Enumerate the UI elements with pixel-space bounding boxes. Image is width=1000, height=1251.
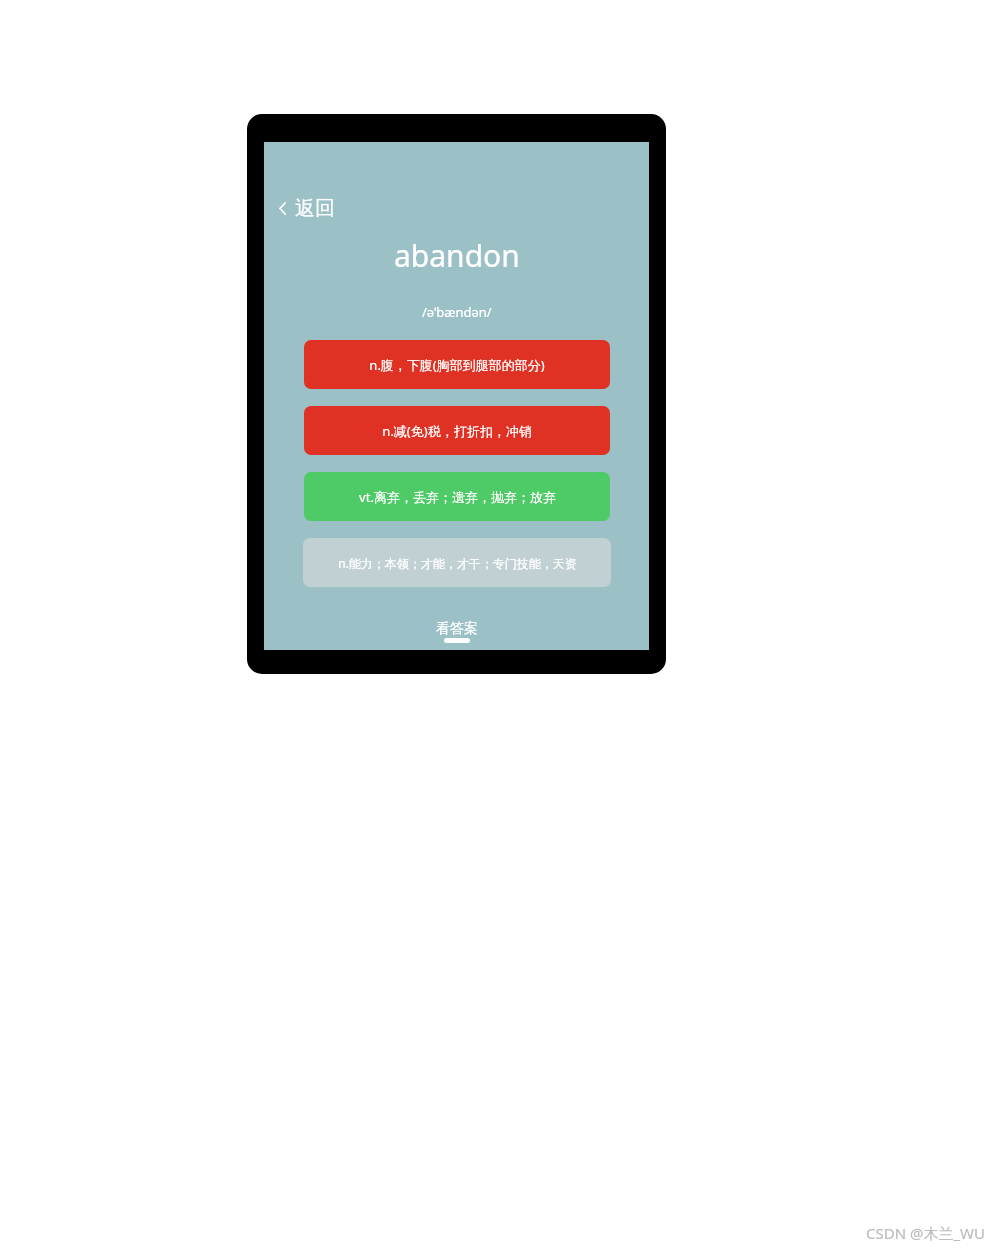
button[interactable]: n.减(免)税，打折扣，冲销 <box>304 406 610 455</box>
staticText: n.腹，下腹(胸部到腿部的部分) <box>369 356 545 374</box>
staticText: 返回 <box>295 196 335 221</box>
button[interactable]: vt.离弃，丢弃；遗弃，抛弃；放弃 <box>304 472 610 521</box>
button[interactable]: 看答案 <box>420 614 494 644</box>
staticText: /əˈbændən/ <box>422 303 492 321</box>
button[interactable]: n.能力；本领；才能，才干；专门技能，天资 <box>303 538 611 587</box>
staticText: 看答案 <box>436 620 478 638</box>
button[interactable]: 返回 <box>274 192 339 225</box>
staticText: CSDN @木兰_WU <box>866 1223 986 1243</box>
staticText: abandon <box>394 235 520 276</box>
staticText: n.减(免)税，打折扣，冲销 <box>382 422 532 440</box>
staticText: vt.离弃，丢弃；遗弃，抛弃；放弃 <box>359 488 556 506</box>
button[interactable]: n.腹，下腹(胸部到腿部的部分) <box>304 340 610 389</box>
staticText: n.能力；本领；才能，才干；专门技能，天资 <box>338 555 577 571</box>
other: 返回 <box>278 200 287 217</box>
